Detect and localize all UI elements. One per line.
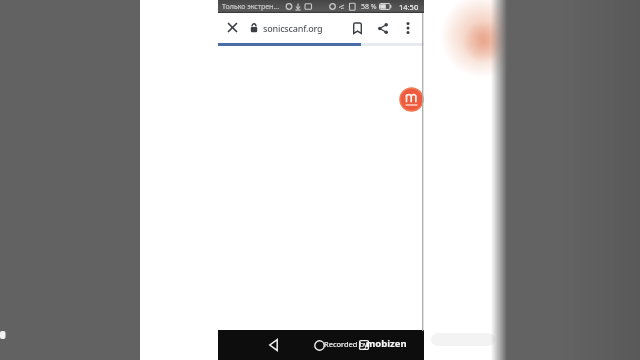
button[interactable] (311, 337, 327, 353)
staticText: Только экстрен... (222, 2, 280, 12)
button[interactable] (400, 88, 423, 111)
button[interactable]: sonicscanf.org (250, 17, 323, 39)
button[interactable] (374, 19, 392, 37)
button[interactable] (348, 19, 366, 37)
staticText: mobizen (366, 337, 407, 350)
staticText: sonicscanf.org (263, 22, 323, 34)
button[interactable] (224, 19, 241, 36)
staticText: 14:50 (399, 2, 419, 12)
button[interactable] (399, 19, 417, 37)
button[interactable] (265, 337, 281, 353)
button[interactable] (357, 338, 371, 352)
staticText: 58 % (361, 2, 377, 12)
staticText: Recorded by (324, 339, 368, 349)
